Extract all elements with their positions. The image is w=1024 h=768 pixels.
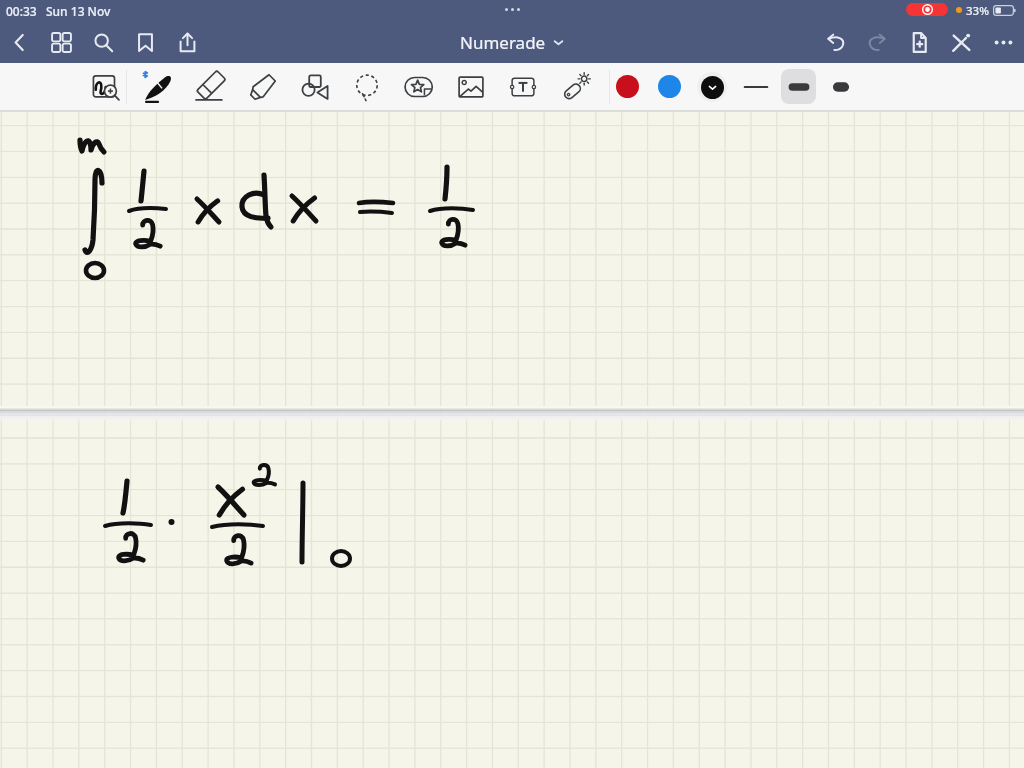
button[interactable]: Numerade [460, 31, 564, 54]
button[interactable]: Redo [856, 22, 898, 63]
button[interactable]: New page [898, 22, 940, 63]
button[interactable]: Image [448, 63, 494, 110]
button[interactable]: Screen recording [906, 3, 948, 16]
button[interactable]: Undo [814, 22, 856, 63]
button[interactable]: Edit tools [940, 22, 982, 63]
button[interactable]: Stroke width 1 [734, 63, 776, 110]
button[interactable]: Eraser [188, 63, 234, 110]
button[interactable]: Text box [500, 63, 546, 110]
staticText: Numerade [460, 31, 546, 54]
button[interactable]: Magic tool [552, 63, 598, 110]
button[interactable]: Highlighter [240, 63, 286, 110]
button[interactable]: Back [0, 22, 40, 63]
button[interactable]: Search [82, 22, 124, 63]
button[interactable]: More [982, 22, 1024, 63]
button[interactable]: Lasso [344, 63, 390, 110]
button[interactable]: Pen [135, 63, 181, 110]
button[interactable]: Bookmark [124, 22, 166, 63]
staticText: Sun 13 Nov [46, 3, 111, 19]
button[interactable]: Sticker [396, 63, 442, 110]
button[interactable]: Shapes [292, 63, 338, 110]
button[interactable]: Lasso zoom [83, 63, 129, 110]
staticText: 00:33 [6, 3, 37, 19]
button[interactable]: Colour [648, 63, 690, 110]
button[interactable]: Share [166, 22, 208, 63]
staticText: 33% [966, 3, 989, 19]
button[interactable]: Stroke width 3 [819, 63, 861, 110]
button[interactable]: Pages [40, 22, 82, 63]
button[interactable]: Colour [606, 63, 648, 110]
button[interactable]: Stroke width 2 [777, 63, 819, 110]
button[interactable]: Black colour, more [691, 63, 733, 110]
